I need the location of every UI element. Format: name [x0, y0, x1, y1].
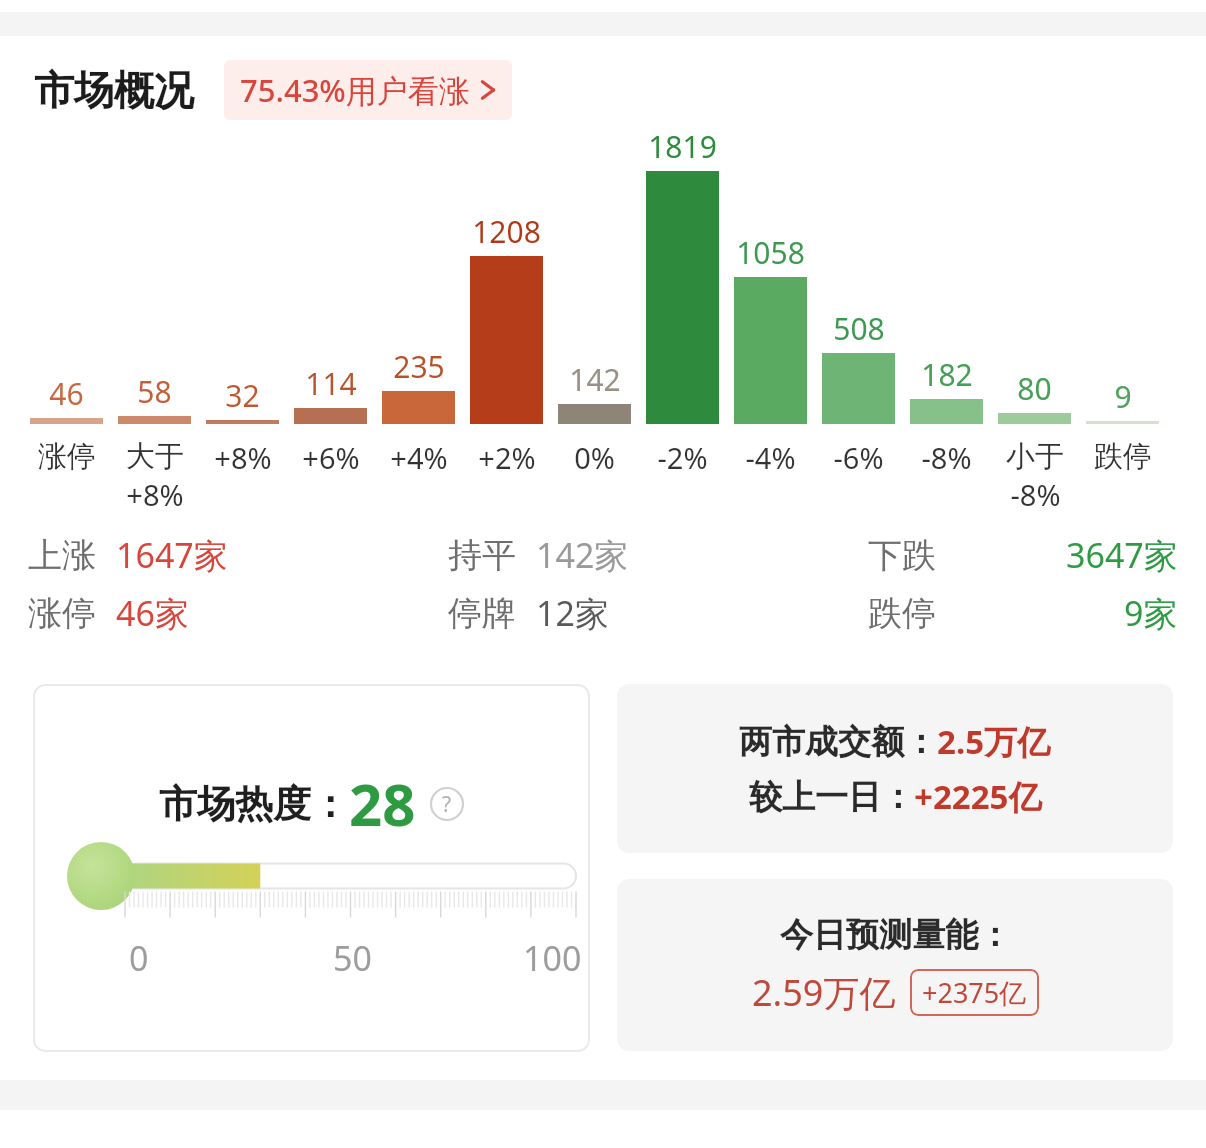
- staticText: 75.43%用户看涨: [240, 69, 470, 111]
- staticText: -8%: [1010, 475, 1061, 510]
- staticText: 持平: [448, 534, 516, 577]
- staticText: 停牌: [448, 592, 516, 635]
- staticText: -8%: [921, 438, 972, 477]
- staticText: +6%: [302, 438, 360, 477]
- staticText: 32: [225, 375, 260, 416]
- staticText: 3647家: [1066, 532, 1178, 578]
- staticText: +2375亿: [922, 974, 1027, 1011]
- staticText: 大于: [126, 438, 184, 475]
- staticText: 下跌: [868, 534, 936, 577]
- staticText: 今日预测量能：: [780, 914, 1011, 956]
- staticText: 1647家: [116, 532, 228, 578]
- staticText: -4%: [745, 438, 796, 477]
- staticText: 142: [569, 359, 621, 400]
- staticText: 46: [49, 373, 84, 414]
- staticText: 上涨: [28, 534, 96, 577]
- staticText: 114: [305, 363, 357, 404]
- staticText: 市场热度：: [159, 780, 349, 828]
- button[interactable]: 今日预测量能：: [617, 879, 1173, 1051]
- staticText: 2.5万亿: [937, 719, 1051, 764]
- staticText: 小于: [1006, 438, 1064, 475]
- staticText: +2225亿: [914, 774, 1042, 819]
- staticText: 182: [921, 354, 973, 395]
- staticText: 2.59万亿: [752, 968, 896, 1017]
- staticText: 涨停: [38, 438, 96, 475]
- staticText: 跌停: [868, 592, 936, 635]
- button[interactable]: 75.43%用户看涨: [224, 60, 512, 120]
- staticText: 235: [393, 346, 445, 387]
- staticText: 9: [1114, 376, 1132, 417]
- staticText: 46家: [116, 590, 189, 636]
- staticText: 1819: [648, 126, 717, 167]
- button[interactable]: 两市成交额：: [617, 684, 1173, 853]
- staticText: 较上一日：: [749, 776, 914, 818]
- staticText: 0: [129, 935, 149, 981]
- staticText: +4%: [390, 438, 448, 477]
- staticText: 1208: [472, 211, 541, 252]
- staticText: +8%: [214, 438, 272, 477]
- staticText: 涨停: [28, 592, 96, 635]
- staticText: 80: [1017, 368, 1052, 409]
- staticText: 0%: [574, 438, 615, 477]
- staticText: 两市成交额：: [739, 721, 937, 763]
- staticText: 市场概况: [34, 65, 194, 115]
- staticText: 50: [333, 935, 372, 981]
- button[interactable]: 帮助: [430, 787, 464, 821]
- staticText: 跌停: [1094, 438, 1152, 475]
- staticText: 9家: [1124, 590, 1178, 636]
- staticText: 58: [137, 371, 172, 412]
- staticText: +8%: [126, 475, 184, 510]
- staticText: -2%: [657, 438, 708, 477]
- staticText: 1058: [736, 232, 805, 273]
- button[interactable]: 市场热度：: [33, 684, 590, 1052]
- staticText: 100: [523, 935, 582, 981]
- staticText: 508: [833, 308, 885, 349]
- staticText: -6%: [833, 438, 884, 477]
- staticText: +2%: [478, 438, 536, 477]
- staticText: 142家: [536, 532, 629, 578]
- staticText: 28: [349, 764, 416, 843]
- staticText: ?: [442, 790, 452, 819]
- staticText: 12家: [536, 590, 609, 636]
